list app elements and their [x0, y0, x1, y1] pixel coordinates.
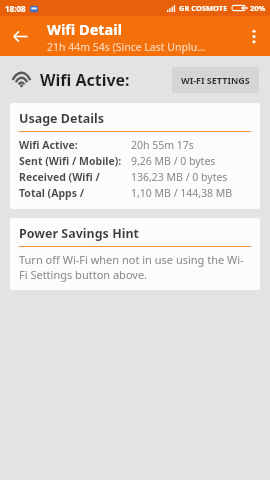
button[interactable]: Back: [0, 16, 40, 56]
button[interactable]: WI-FI SETTINGS: [172, 67, 259, 93]
staticText: Wifi Active:: [19, 138, 78, 152]
button[interactable]: More options: [237, 20, 270, 53]
staticText: 20h 55m 17s: [131, 138, 194, 152]
staticText: Sent (Wifi / Mobile):: [19, 154, 122, 168]
staticText: Wifi Detail: [47, 19, 122, 39]
staticText: Received (Wifi / Mobile):: [19, 170, 131, 184]
staticText: WI-FI SETTINGS: [181, 74, 250, 86]
staticText: 9,26 MB / 0 bytes: [131, 154, 216, 168]
staticText: Usage Details: [19, 110, 105, 127]
staticText: Wifi Active:: [40, 69, 130, 91]
staticText: GR COSMOTE: [179, 3, 228, 13]
staticText: 1,10 MB / 144,38 MB: [131, 186, 233, 200]
staticText: 136,23 MB / 0 bytes: [131, 170, 228, 184]
staticText: 21h 44m 54s (Since Last Unplu…: [47, 40, 206, 54]
staticText: 20%: [250, 3, 266, 13]
staticText: 18:08: [5, 3, 26, 14]
staticText: Power Savings Hint: [19, 225, 139, 242]
staticText: Turn off Wi-Fi when not in use using the…: [19, 252, 251, 282]
staticText: Total (Apps / System):: [19, 186, 131, 200]
